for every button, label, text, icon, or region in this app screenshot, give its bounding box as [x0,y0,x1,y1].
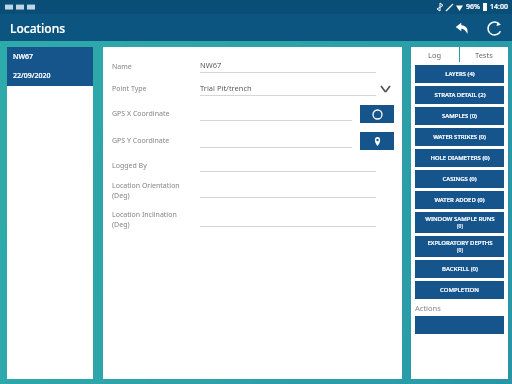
button[interactable]: Log [411,47,459,62]
staticText: STRATA DETAIL (2) [434,91,486,99]
staticText: LAYERS (4) [445,70,475,78]
button[interactable]: Open dropdown [376,82,394,96]
button[interactable]: Get GPS X from compass [360,105,394,123]
staticText: Location Orientation [112,181,180,191]
button[interactable]: Back [452,18,472,38]
staticText: Log [428,50,442,60]
staticText: Location Inclination [112,210,177,220]
staticText: CASINGS (0) [442,175,477,183]
staticText: (0) [457,247,463,254]
button[interactable]: WATER ADDED (0) [415,191,504,209]
staticText: 96% [466,2,480,12]
button[interactable]: NW67 [7,47,93,86]
staticText: (Deg) [112,220,130,230]
staticText: WINDOW SAMPLE RUNS [425,215,495,223]
staticText: BACKFILL (0) [442,265,478,273]
button[interactable]: CASINGS (0) [415,170,504,188]
staticText: Point Type [112,84,147,94]
button[interactable]: WATER STRIKES (0) [415,128,504,146]
button[interactable]: COMPLETION [415,281,504,299]
button[interactable]: Get GPS Y from location [360,132,394,150]
button[interactable]: Refresh [484,18,504,38]
button[interactable]: WINDOW SAMPLE RUNS [415,212,504,233]
staticText: GPS X Coordinate [112,109,170,119]
staticText: (Deg) [112,191,130,201]
staticText: NW67 [13,52,34,62]
staticText: EXPLORATORY DEPTHS [427,239,493,247]
staticText: 22/09/2020 [13,71,51,81]
staticText: (0) [457,223,463,230]
staticText: Tests [475,50,493,60]
button[interactable]: BACKFILL (0) [415,260,504,278]
staticText: Name [112,62,132,72]
button[interactable]: SAMPLES (0) [415,107,504,125]
staticText: Locations [10,20,66,36]
staticText: HOLE DIAMETERS (0) [430,154,490,162]
staticText: Logged By [112,161,147,171]
button[interactable]: Tests [460,47,508,62]
button[interactable]: LAYERS (4) [415,65,504,83]
staticText: Trial Pit/trench [200,83,252,93]
button[interactable]: HOLE DIAMETERS (0) [415,149,504,167]
staticText: COMPLETION [440,286,479,294]
staticText: GPS Y Coordinate [112,136,170,146]
staticText: WATER STRIKES (0) [433,133,486,141]
staticText: 14:00 [490,2,508,12]
staticText: WATER ADDED (0) [434,196,485,204]
staticText: NW67 [200,60,222,70]
staticText: SAMPLES (0) [442,112,477,120]
button[interactable]: STRATA DETAIL (2) [415,86,504,104]
button[interactable]: EXPLORATORY DEPTHS [415,236,504,257]
staticText: Actions [415,303,441,313]
